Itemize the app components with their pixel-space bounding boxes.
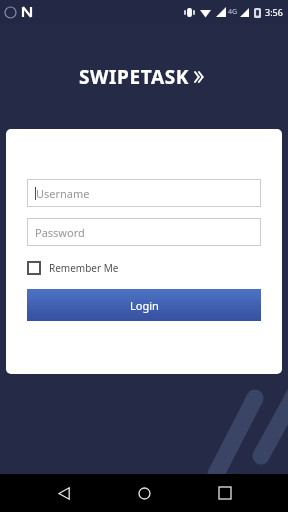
staticText: Username <box>36 186 90 201</box>
staticText: SWIPETASK <box>79 64 189 90</box>
button[interactable]: Username <box>27 179 261 207</box>
button[interactable]: Home <box>127 476 161 510</box>
staticText: 3:56 <box>265 6 283 18</box>
staticText: Login <box>130 298 159 313</box>
button[interactable]: Remember Me <box>27 259 119 277</box>
button[interactable]: Back <box>47 476 81 510</box>
button[interactable]: Login <box>27 289 261 321</box>
staticText: Password <box>35 225 85 240</box>
button[interactable]: Recents <box>208 476 242 510</box>
button[interactable]: Password <box>27 218 261 246</box>
staticText: Remember Me <box>49 261 119 275</box>
staticText: 4G <box>228 7 238 17</box>
